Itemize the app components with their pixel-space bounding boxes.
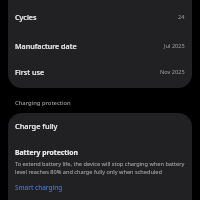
staticText: Jul 2025	[164, 42, 185, 50]
button[interactable]: Charge fully	[8, 113, 192, 138]
button[interactable]: First use	[8, 59, 192, 85]
button[interactable]: Manufacture date	[8, 33, 192, 59]
staticText: Manufacture date	[15, 41, 77, 51]
button[interactable]: Smart charging	[15, 183, 63, 192]
staticText: Charge fully	[15, 121, 58, 131]
staticText: To extend battery life, the device will …	[15, 160, 185, 176]
staticText: Smart charging	[15, 183, 63, 192]
staticText: Cycles	[15, 12, 37, 22]
staticText: Charging protection	[15, 99, 71, 107]
staticText: First use	[15, 67, 45, 77]
staticText: 24	[178, 13, 185, 21]
staticText: Nov 2025	[160, 68, 185, 76]
button[interactable]: Cycles	[8, 0, 192, 33]
staticText: Battery protection	[15, 148, 78, 157]
